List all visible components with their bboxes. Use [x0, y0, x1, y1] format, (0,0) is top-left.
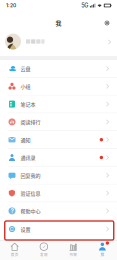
button[interactable]: 笔记本	[0, 96, 117, 113]
button[interactable]: 书架	[58, 240, 88, 259]
staticText: 通讯录	[21, 154, 36, 161]
button[interactable]: 验证信息	[0, 185, 117, 202]
staticText: 云盘	[21, 65, 31, 72]
button[interactable]: 阅读排行	[0, 113, 117, 131]
staticText: 首页	[11, 252, 19, 257]
staticText: 书架	[69, 252, 77, 257]
button[interactable]: 回复我的	[0, 167, 117, 185]
staticText: 验证信息	[21, 189, 41, 197]
staticText: 设置	[21, 225, 31, 233]
button[interactable]: 小组	[0, 78, 117, 96]
button[interactable]	[0, 32, 117, 56]
staticText: ?	[10, 207, 13, 215]
staticText: 5G	[81, 2, 88, 9]
staticText: 帮助中心	[21, 207, 41, 214]
staticText: 回复我的	[21, 172, 41, 179]
button[interactable]: 通知	[0, 131, 117, 149]
staticText: 笔记本	[21, 100, 36, 108]
button[interactable]: 我	[88, 240, 117, 259]
button[interactable]: ?	[0, 202, 117, 220]
button[interactable]: 通讯录	[0, 149, 117, 167]
button[interactable]: Settings	[101, 15, 113, 27]
staticText: 阅读排行	[21, 118, 41, 125]
staticText: 小组	[21, 83, 31, 90]
staticText: 我	[55, 19, 61, 27]
button[interactable]: 设置	[0, 220, 117, 238]
button[interactable]: 首页	[0, 240, 29, 259]
button[interactable]: 云盘	[0, 60, 117, 78]
staticText: 1:20	[6, 2, 16, 8]
button[interactable]: 发现	[29, 240, 58, 259]
staticText: 我	[100, 252, 104, 257]
staticText: 通知	[21, 136, 31, 143]
staticText: 发现	[40, 252, 48, 257]
